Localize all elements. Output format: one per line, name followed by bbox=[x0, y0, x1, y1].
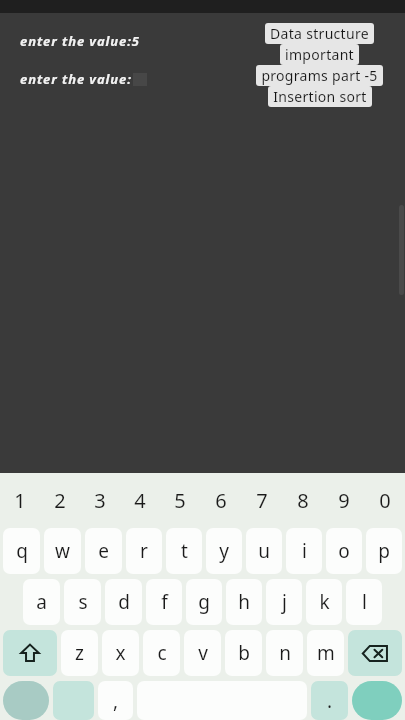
staticText: s bbox=[78, 589, 88, 615]
button[interactable]: w bbox=[44, 528, 81, 574]
staticText: p bbox=[378, 538, 390, 564]
staticText: 6 bbox=[215, 487, 227, 514]
staticText: enter the value:5 bbox=[20, 32, 140, 50]
button[interactable]: 5 bbox=[160, 476, 200, 524]
button[interactable]: b bbox=[225, 630, 262, 676]
button[interactable]: Backspace bbox=[348, 630, 402, 676]
button[interactable]: c bbox=[143, 630, 180, 676]
button[interactable]: x bbox=[102, 630, 139, 676]
button[interactable]: l bbox=[346, 579, 382, 625]
button[interactable]: u bbox=[246, 528, 282, 574]
staticText: j bbox=[282, 589, 287, 615]
staticText: b bbox=[238, 640, 250, 666]
button[interactable]: k bbox=[306, 579, 342, 625]
button[interactable]: d bbox=[105, 579, 142, 625]
button[interactable]: p bbox=[366, 528, 402, 574]
staticText: important bbox=[285, 45, 354, 64]
button[interactable]: 7 bbox=[241, 476, 282, 524]
staticText: a bbox=[36, 589, 47, 615]
button[interactable]: o bbox=[326, 528, 362, 574]
staticText: enter the value: bbox=[20, 70, 132, 88]
button[interactable]: 0 bbox=[364, 476, 405, 524]
staticText: c bbox=[157, 640, 167, 666]
staticText: m bbox=[317, 640, 335, 666]
staticText: 3 bbox=[94, 487, 106, 514]
button[interactable]: v bbox=[184, 630, 221, 676]
button[interactable]: s bbox=[64, 579, 101, 625]
staticText: . bbox=[327, 688, 333, 714]
staticText: 2 bbox=[54, 487, 66, 514]
button[interactable]: Enter bbox=[352, 681, 402, 720]
button[interactable]: f bbox=[146, 579, 182, 625]
button[interactable]: 6 bbox=[200, 476, 241, 524]
staticText: k bbox=[319, 589, 330, 615]
staticText: y bbox=[219, 538, 229, 564]
staticText: 4 bbox=[134, 487, 146, 514]
staticText: u bbox=[258, 538, 270, 564]
staticText: i bbox=[302, 538, 307, 564]
button[interactable]: t bbox=[166, 528, 202, 574]
button[interactable]: j bbox=[266, 579, 302, 625]
button[interactable]: q bbox=[3, 528, 40, 574]
button[interactable]: z bbox=[61, 630, 98, 676]
staticText: d bbox=[118, 589, 130, 615]
button[interactable]: 8 bbox=[282, 476, 323, 524]
staticText: o bbox=[338, 538, 350, 564]
staticText: t bbox=[181, 538, 188, 564]
staticText: 9 bbox=[338, 487, 350, 514]
staticText: q bbox=[16, 538, 28, 564]
button[interactable]: y bbox=[206, 528, 242, 574]
button[interactable]: . bbox=[311, 681, 348, 720]
staticText: v bbox=[198, 640, 208, 666]
staticText: z bbox=[75, 640, 84, 666]
staticText: h bbox=[238, 589, 250, 615]
staticText: r bbox=[140, 538, 148, 564]
button[interactable]: i bbox=[286, 528, 322, 574]
staticText: e bbox=[98, 538, 109, 564]
button[interactable]: 1 bbox=[0, 476, 40, 524]
staticText: 0 bbox=[379, 487, 391, 514]
staticText: 5 bbox=[174, 487, 186, 514]
button[interactable]: r bbox=[126, 528, 162, 574]
staticText: x bbox=[115, 640, 126, 666]
button[interactable]: , bbox=[98, 681, 133, 720]
staticText: l bbox=[362, 589, 367, 615]
button[interactable]: a bbox=[23, 579, 60, 625]
button[interactable]: 4 bbox=[120, 476, 160, 524]
staticText: 8 bbox=[297, 487, 309, 514]
button[interactable]: 2 bbox=[40, 476, 80, 524]
staticText: 7 bbox=[256, 487, 268, 514]
button[interactable]: Emoji bbox=[3, 681, 49, 720]
staticText: f bbox=[161, 589, 168, 615]
button[interactable]: h bbox=[226, 579, 262, 625]
button[interactable]: Shift bbox=[3, 630, 57, 676]
button[interactable]: Symbols bbox=[53, 681, 94, 720]
staticText: Insertion sort bbox=[273, 87, 367, 106]
button[interactable]: n bbox=[266, 630, 303, 676]
staticText: 1 bbox=[14, 487, 26, 514]
staticText: Data structure bbox=[270, 24, 369, 43]
staticText: n bbox=[279, 640, 291, 666]
button[interactable]: m bbox=[307, 630, 344, 676]
button[interactable]: 9 bbox=[323, 476, 364, 524]
button[interactable]: e bbox=[85, 528, 122, 574]
button[interactable]: g bbox=[186, 579, 222, 625]
staticText: w bbox=[55, 538, 70, 564]
button[interactable]: 3 bbox=[80, 476, 120, 524]
staticText: programs part -5 bbox=[261, 66, 378, 85]
staticText: g bbox=[198, 589, 210, 615]
staticText: , bbox=[113, 688, 119, 714]
